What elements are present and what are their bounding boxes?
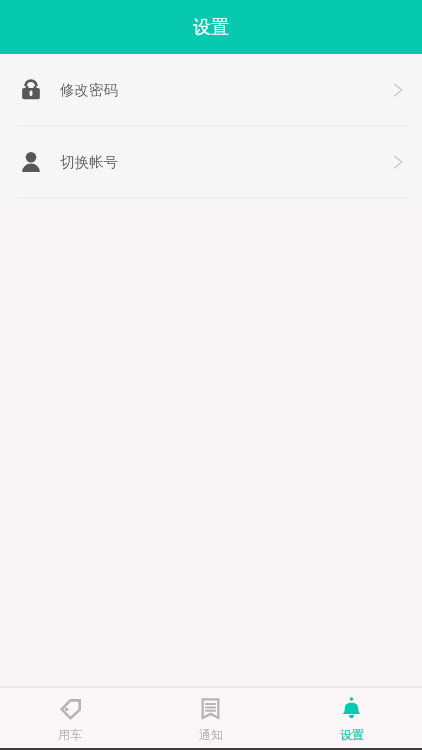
button[interactable]: 通知 (140, 686, 281, 750)
staticText: 用车 (58, 727, 82, 742)
button[interactable]: 修改密码 (0, 54, 422, 125)
button[interactable]: 设置 (281, 686, 422, 750)
staticText: 修改密码 (60, 81, 118, 99)
staticText: 通知 (199, 727, 223, 742)
button[interactable]: 用车 (0, 686, 140, 750)
staticText: 设置 (193, 16, 229, 39)
staticText: 设置 (340, 727, 364, 742)
staticText: 切换帐号 (60, 153, 118, 171)
button[interactable]: 切换帐号 (0, 126, 422, 197)
